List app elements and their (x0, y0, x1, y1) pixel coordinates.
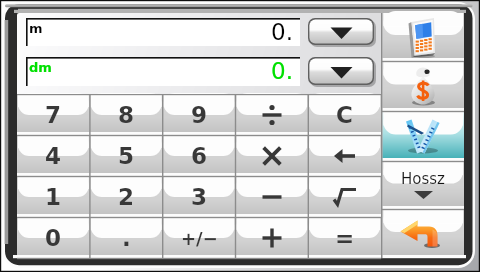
button[interactable]: Divide (235, 95, 308, 135)
staticText: 1 (45, 184, 62, 211)
button[interactable]: Select unit (308, 18, 375, 46)
button[interactable]: Select unit (308, 57, 375, 86)
button[interactable]: 1 (17, 177, 90, 217)
button[interactable]: dm (26, 57, 300, 86)
button[interactable]: C (308, 95, 381, 135)
other: Backspace (330, 141, 360, 171)
staticText: 0. (271, 19, 293, 46)
button[interactable]: m (26, 18, 300, 46)
staticText: 2 (118, 184, 135, 211)
staticText: 0. (271, 58, 293, 85)
staticText: 5 (118, 143, 135, 170)
button[interactable]: Currency (382, 62, 464, 111)
button[interactable]: 7 (17, 95, 90, 135)
staticText: Hossz (401, 170, 445, 187)
other: Multiply (259, 143, 285, 169)
staticText: 6 (191, 143, 208, 170)
button[interactable]: 9 (163, 95, 236, 135)
staticText: C (336, 102, 353, 129)
staticText: 9 (191, 102, 208, 129)
button[interactable]: Units (382, 112, 464, 161)
button[interactable]: Square root (308, 177, 381, 217)
button[interactable]: Back (382, 210, 464, 258)
staticText: +/− (181, 228, 218, 249)
other: Minus (259, 184, 285, 210)
button[interactable]: 2 (90, 177, 163, 217)
button[interactable]: Backspace (308, 136, 381, 176)
button[interactable]: 8 (90, 95, 163, 135)
button[interactable]: = (308, 218, 381, 258)
staticText: 4 (45, 143, 62, 170)
button[interactable]: 5 (90, 136, 163, 176)
staticText: 8 (118, 102, 135, 129)
button[interactable]: +/− (163, 218, 236, 258)
button[interactable]: Calculator (382, 13, 464, 61)
button[interactable]: Multiply (235, 136, 308, 176)
staticText: 7 (45, 102, 62, 129)
staticText: 3 (191, 184, 208, 211)
staticText: = (335, 225, 355, 252)
staticText: 0 (45, 225, 62, 252)
staticText: m (29, 21, 43, 36)
button[interactable]: 4 (17, 136, 90, 176)
other: Divide (259, 102, 285, 128)
button[interactable]: Minus (235, 177, 308, 217)
button[interactable]: 0 (17, 218, 90, 258)
staticText: dm (29, 60, 52, 75)
button[interactable]: 6 (163, 136, 236, 176)
button[interactable]: Category: Length (382, 162, 464, 209)
other: Plus (259, 225, 285, 251)
button[interactable]: 3 (163, 177, 236, 217)
other: Square root (330, 182, 360, 212)
staticText: . (122, 225, 131, 252)
button[interactable]: Plus (235, 218, 308, 258)
button[interactable]: . (90, 218, 163, 258)
